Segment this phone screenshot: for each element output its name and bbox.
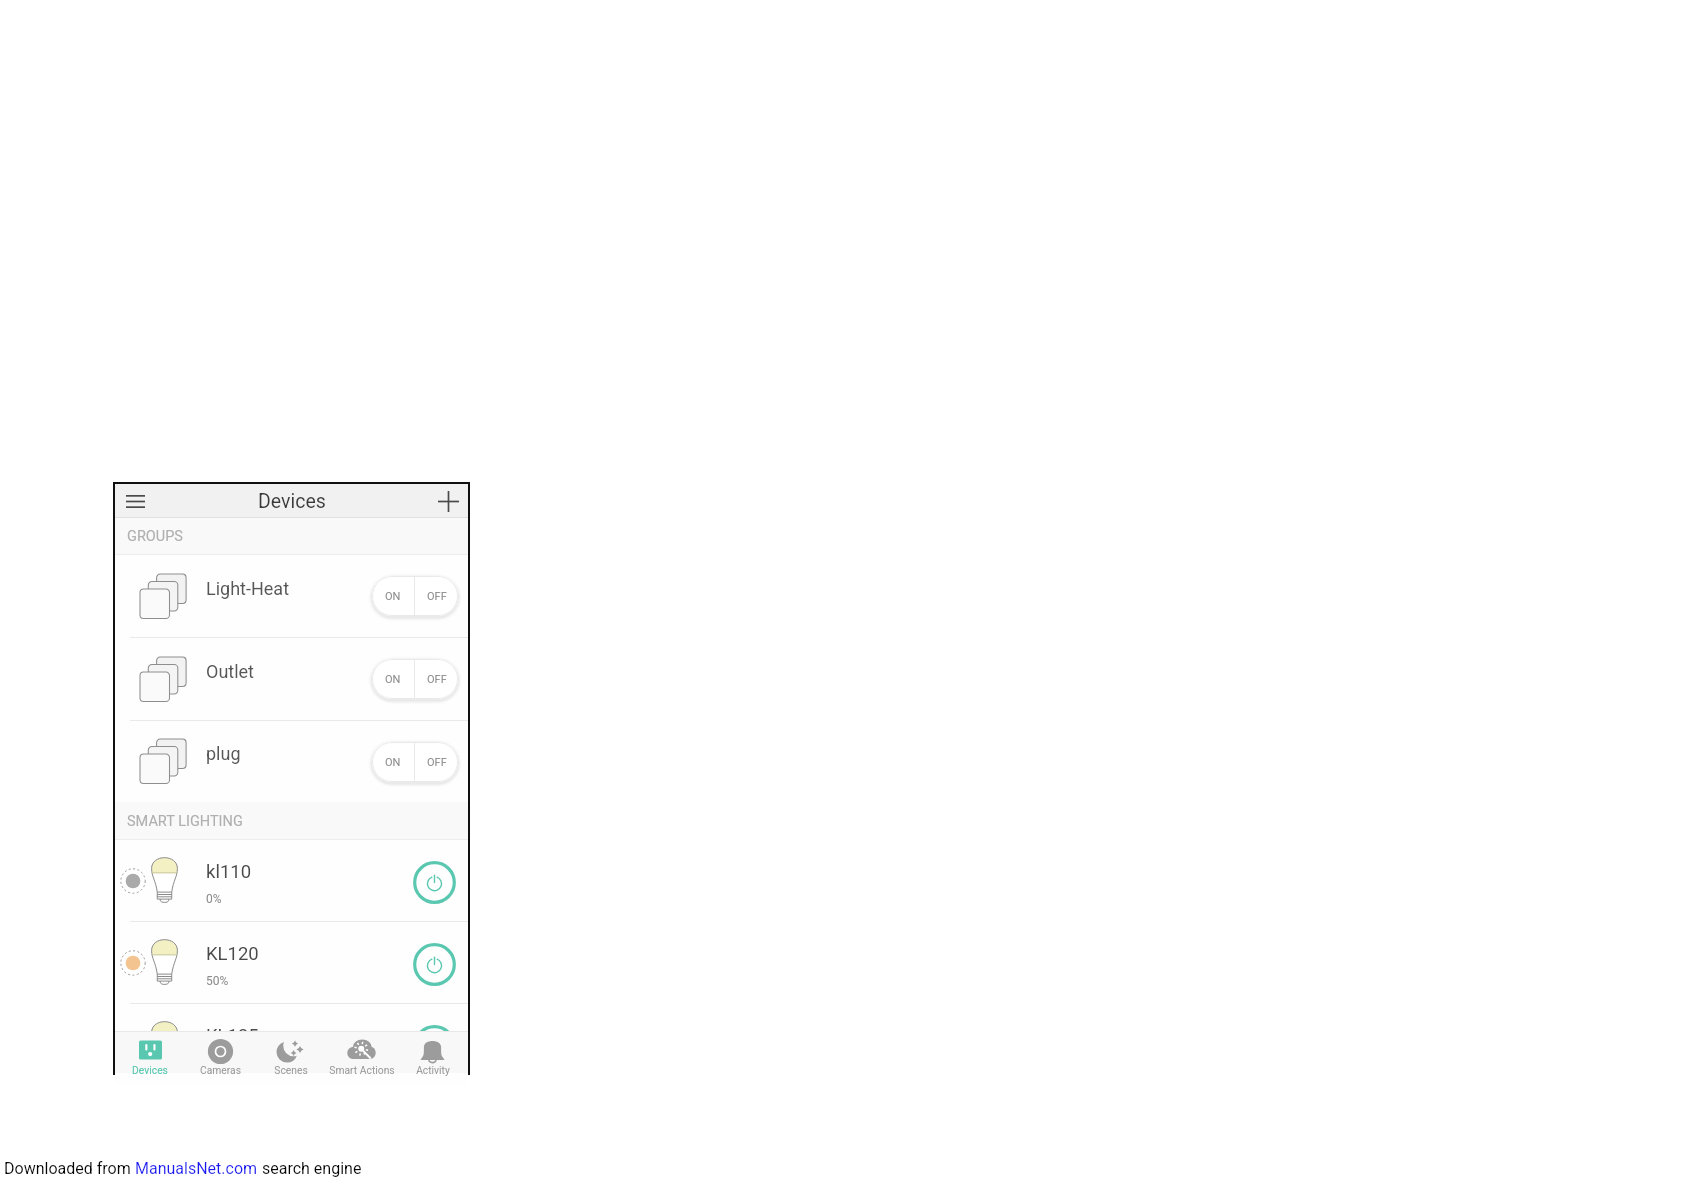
button[interactable]: KL135 [115,1004,468,1085]
staticText: Scenes [274,1064,308,1076]
button[interactable]: Menu [118,484,152,518]
staticText: 50% [206,974,229,988]
button[interactable]: Cameras [185,1031,255,1073]
button[interactable]: KL120 [115,922,468,1003]
staticText: ManualsNet.com [135,1159,258,1178]
staticText: ON [385,590,401,603]
staticText: Outlet [206,661,255,682]
staticText: Activity [416,1064,450,1076]
staticText: OFF [427,756,447,769]
button[interactable]: Smart Actions [326,1031,397,1073]
button[interactable]: Add device [431,484,465,518]
staticText: GROUPS [127,528,183,545]
staticText: ON [385,673,401,686]
staticText: Smart Actions [329,1064,395,1076]
button[interactable]: Activity [397,1031,468,1073]
button[interactable]: Light-Heat [115,555,468,637]
staticText: 100% [206,1056,236,1070]
staticText: 0% [206,892,222,906]
staticText: ON [385,756,401,769]
staticText: Devices [132,1064,168,1076]
staticText: Downloaded from [4,1159,135,1178]
staticText: kl110 [206,861,252,883]
staticText: OFF [427,590,447,603]
button[interactable]: Power toggle [411,941,458,988]
button[interactable]: Outlet [115,638,468,720]
button[interactable]: Power toggle [411,1023,458,1070]
button[interactable]: ON [372,576,458,616]
button[interactable]: Devices [115,1031,185,1073]
staticText: SMART LIGHTING [127,813,243,830]
button[interactable]: kl110 [115,840,468,921]
button[interactable]: ON [372,659,458,699]
staticText: plug [206,743,241,764]
button[interactable]: ON [372,742,458,782]
staticText: KL135 [206,1025,259,1047]
button[interactable]: plug [115,721,468,802]
staticText: KL120 [206,943,259,965]
button[interactable]: Power toggle [411,859,458,906]
button[interactable]: Scenes [255,1031,326,1073]
staticText: search engine [258,1159,362,1178]
staticText: OFF [427,673,447,686]
staticText: Cameras [200,1064,241,1076]
staticText: Light-Heat [206,578,290,599]
staticText: Devices [258,490,326,513]
